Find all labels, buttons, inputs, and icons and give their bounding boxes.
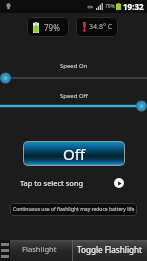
button[interactable]: Tap to select song — [20, 176, 124, 190]
button[interactable]: Off — [24, 142, 124, 165]
staticText: 79% — [44, 22, 60, 33]
staticText: 79% — [105, 3, 115, 10]
button[interactable]: Menu — [0, 240, 10, 261]
staticText: Speed On — [60, 62, 88, 70]
staticText: 34.8° C — [89, 22, 113, 32]
staticText: Flashlight — [22, 244, 57, 254]
button[interactable]: 34.8° C — [76, 17, 118, 37]
staticText: Speed Off — [60, 92, 88, 100]
button[interactable]: 79% — [27, 17, 69, 37]
button[interactable]: Speed slider — [0, 71, 147, 85]
staticText: Off — [63, 144, 86, 164]
staticText: Toggle Flashlight — [77, 244, 143, 255]
button[interactable]: Flashlight — [10, 240, 72, 261]
staticText: Tap to select song — [20, 178, 84, 188]
button[interactable]: Speed slider — [0, 99, 147, 113]
staticText: Continuous use of flashlight may reduce … — [13, 206, 135, 213]
button[interactable]: Toggle Flashlight — [73, 240, 147, 261]
staticText: 19:32 — [123, 1, 144, 12]
